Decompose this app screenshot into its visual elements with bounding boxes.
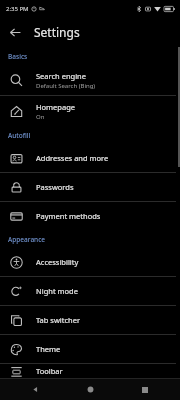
staticText: Autofill xyxy=(8,131,31,140)
button[interactable]: Accessibility xyxy=(0,248,180,276)
button[interactable]: Passwords xyxy=(0,173,180,201)
button[interactable]: Payment methods xyxy=(0,202,180,230)
staticText: Default Search (Bing) xyxy=(36,82,96,90)
staticText: Basics xyxy=(8,52,28,61)
button[interactable]: Search engine xyxy=(0,65,180,95)
button[interactable]: Toolbar xyxy=(0,364,180,378)
button[interactable]: Addresses and more xyxy=(0,144,180,172)
staticText: Payment methods xyxy=(36,211,101,221)
staticText: Accessibility xyxy=(36,257,79,267)
staticText: Homepage xyxy=(36,102,75,112)
staticText: Theme xyxy=(36,344,61,354)
staticText: Search engine xyxy=(36,71,86,81)
staticText: On xyxy=(36,113,45,121)
staticText: Addresses and more xyxy=(36,153,109,163)
staticText: Settings xyxy=(34,24,80,40)
staticText: Tab switcher xyxy=(36,315,81,325)
button[interactable]: Recent apps xyxy=(125,379,165,400)
button[interactable]: Night mode xyxy=(0,277,180,305)
button[interactable]: Back xyxy=(15,379,55,400)
button[interactable]: Homepage xyxy=(0,96,180,126)
button[interactable]: Theme xyxy=(0,335,180,363)
staticText: Night mode xyxy=(36,286,78,296)
button[interactable]: Home xyxy=(70,379,110,400)
staticText: Appearance xyxy=(8,235,46,244)
button[interactable]: Back xyxy=(4,21,26,43)
staticText: Passwords xyxy=(36,182,74,192)
staticText: 2:35 PM xyxy=(6,5,29,13)
button[interactable]: Tab switcher xyxy=(0,306,180,334)
staticText: Toolbar xyxy=(36,366,63,376)
